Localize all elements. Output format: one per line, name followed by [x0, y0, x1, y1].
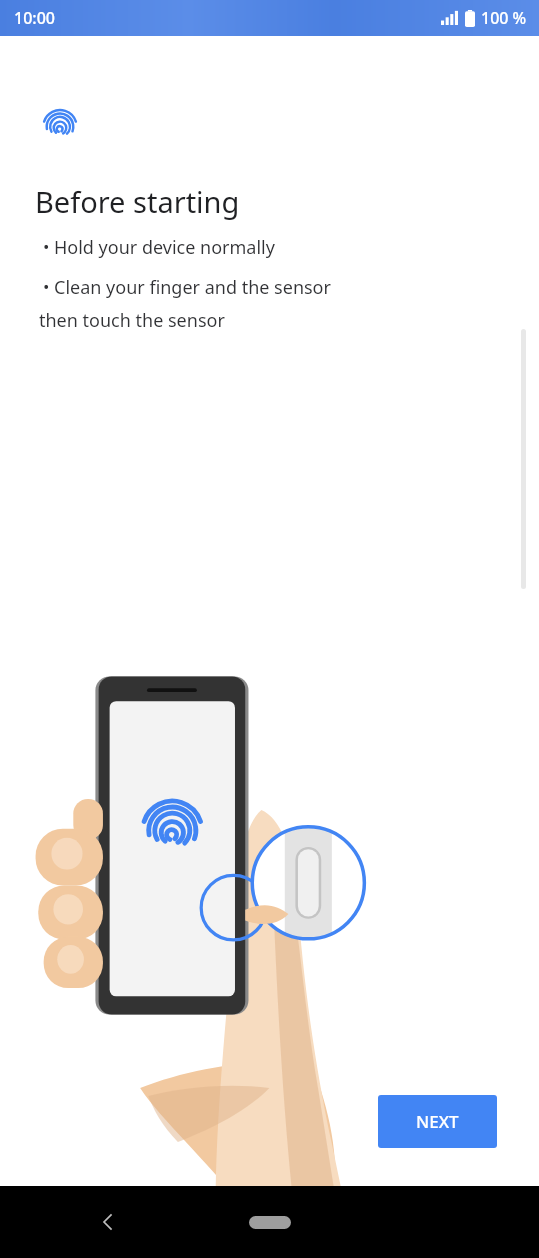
staticText: •	[43, 275, 50, 298]
staticText: Clean your finger and the sensor	[54, 275, 331, 300]
button[interactable]: Back	[84, 1198, 132, 1246]
staticText: •	[43, 235, 50, 258]
staticText: Hold your device normally	[54, 235, 275, 260]
staticText: Before starting	[35, 182, 240, 221]
staticText: 10:00	[14, 7, 55, 29]
staticText: 100 %	[481, 7, 527, 29]
staticText: then touch the sensor	[39, 308, 225, 333]
button[interactable]: NEXT	[378, 1095, 497, 1148]
button[interactable]: Home	[240, 1206, 300, 1238]
staticText: NEXT	[416, 1110, 459, 1133]
